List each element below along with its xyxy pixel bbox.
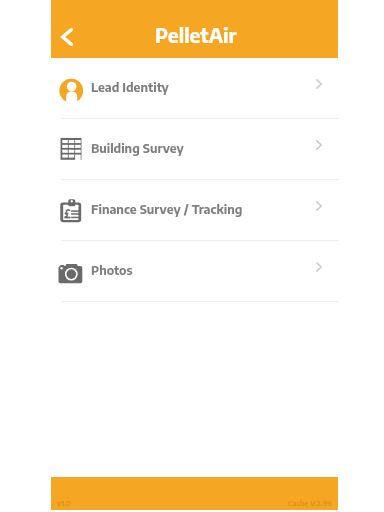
staticText: Finance Survey / Tracking [91, 201, 243, 216]
staticText: Lead Identity [91, 79, 169, 94]
staticText: PelletAir [155, 23, 237, 48]
button[interactable]: Photos [51, 241, 338, 302]
staticText: Cache V.2.99 [288, 499, 332, 508]
staticText: Photos [91, 262, 133, 277]
button[interactable]: Finance Survey / Tracking [51, 180, 338, 241]
staticText: Building Survey [91, 140, 184, 155]
button[interactable]: Back [50, 20, 84, 54]
staticText: v1.0 [57, 499, 71, 508]
button[interactable]: Lead Identity [51, 58, 338, 119]
button[interactable]: Building Survey [51, 119, 338, 180]
